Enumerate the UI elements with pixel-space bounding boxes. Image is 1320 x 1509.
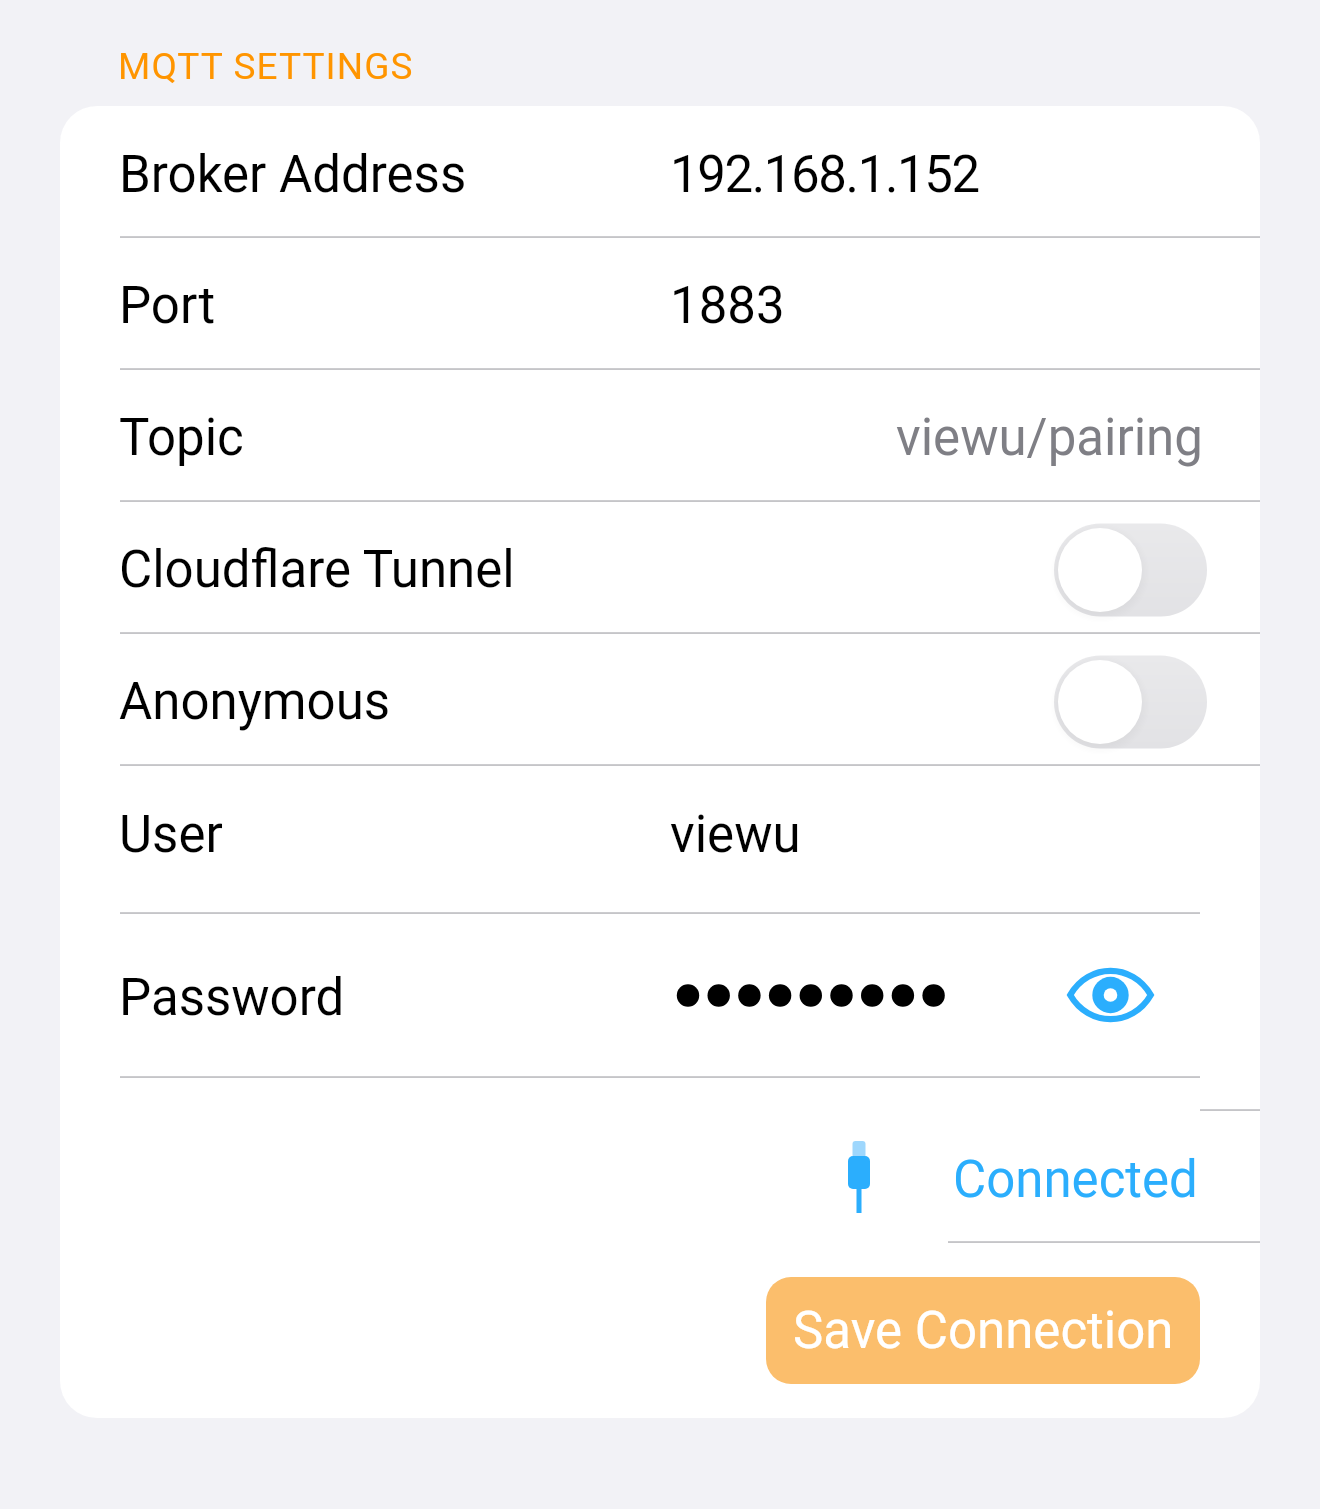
staticText: Cloudflare Tunnel xyxy=(119,540,515,600)
button[interactable]: Anonymous xyxy=(60,633,1260,765)
staticText: MQTT SETTINGS xyxy=(118,45,414,85)
staticText: Port xyxy=(119,276,216,336)
button[interactable]: Topic xyxy=(60,369,1260,501)
button[interactable]: Show password xyxy=(1060,940,1170,1050)
button[interactable]: User xyxy=(60,765,1260,913)
staticText: Save Connection xyxy=(793,1301,1174,1361)
button[interactable]: Password xyxy=(60,913,1260,1077)
staticText: Anonymous xyxy=(119,672,391,732)
staticText: Connected xyxy=(953,1150,1198,1210)
staticText: User xyxy=(119,805,223,865)
staticText: Password xyxy=(119,968,345,1028)
button[interactable]: Anonymous toggle, off xyxy=(1044,644,1216,754)
staticText: Topic xyxy=(119,408,244,468)
staticText: viewu xyxy=(670,805,801,865)
button[interactable]: Cloudflare Tunnel toggle, off xyxy=(1044,512,1216,622)
button[interactable]: Port xyxy=(60,237,1260,369)
button[interactable]: Cloudflare Tunnel xyxy=(60,501,1260,633)
staticText: Broker Address xyxy=(119,145,467,205)
button[interactable]: Broker Address xyxy=(60,106,1260,237)
button[interactable]: Save Connection xyxy=(766,1277,1200,1384)
staticText: viewu/pairing xyxy=(896,408,1203,468)
staticText: 1883 xyxy=(670,276,785,336)
staticText: 192.168.1.152 xyxy=(670,145,979,205)
